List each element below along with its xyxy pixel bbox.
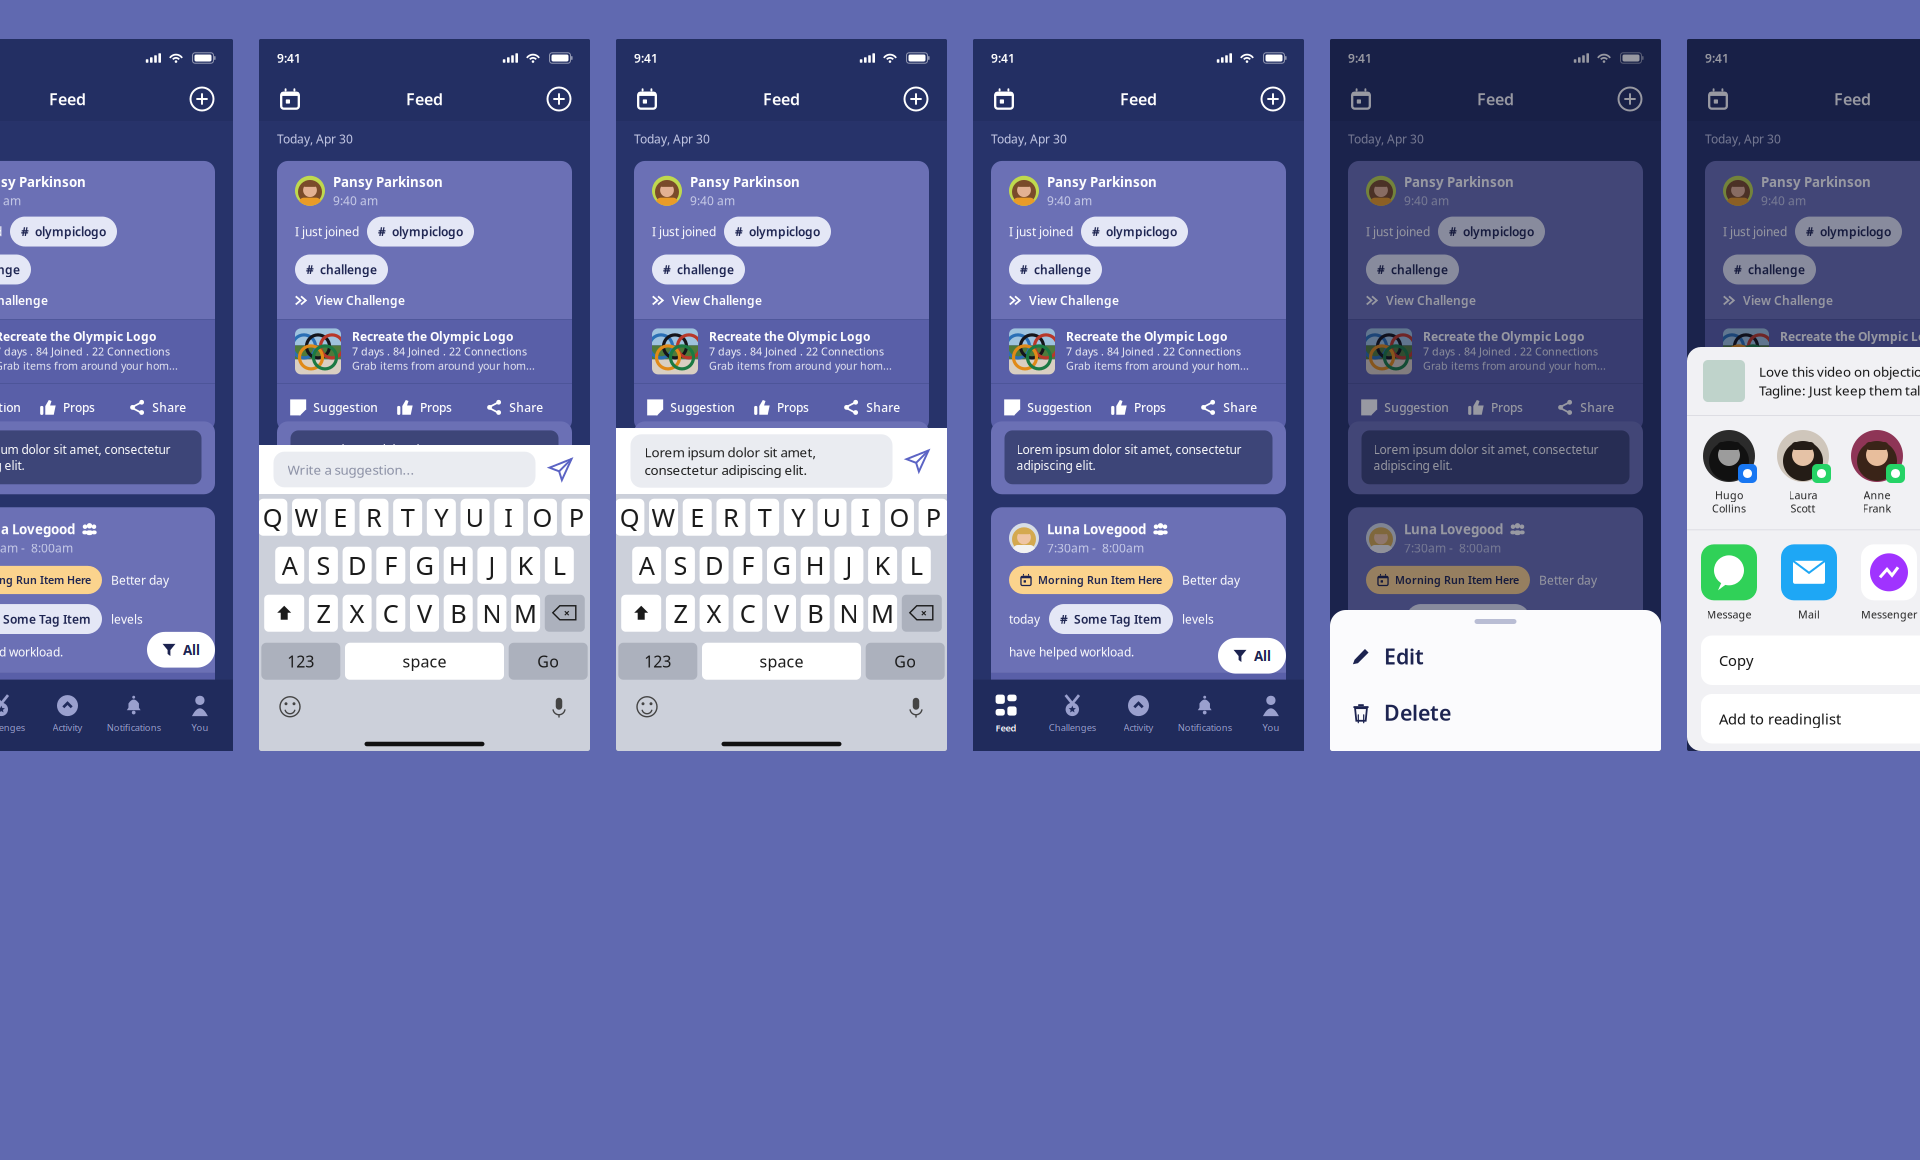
button[interactable]: Share: [1184, 689, 1274, 705]
button[interactable]: J: [834, 547, 863, 584]
button[interactable]: Feed: [973, 695, 1039, 734]
button[interactable]: Send: [902, 446, 932, 476]
button[interactable]: Props: [379, 399, 470, 415]
button[interactable]: H: [444, 547, 473, 584]
button[interactable]: L: [545, 547, 574, 584]
button[interactable]: H: [801, 547, 830, 584]
button[interactable]: View Challenge: [1009, 292, 1268, 308]
button[interactable]: T: [750, 499, 779, 536]
button[interactable]: New post: [185, 82, 219, 116]
button[interactable]: Share: [113, 689, 203, 705]
button[interactable]: All: [147, 632, 215, 668]
button[interactable]: 2: [1360, 689, 1450, 705]
button[interactable]: Share: [470, 399, 560, 415]
button[interactable]: Shift: [264, 595, 304, 632]
button[interactable]: K: [868, 547, 897, 584]
button[interactable]: Emoji: [634, 694, 660, 720]
button[interactable]: B: [444, 595, 473, 632]
button[interactable]: space: [345, 643, 504, 680]
button[interactable]: All: [1218, 638, 1286, 674]
button[interactable]: G: [767, 547, 796, 584]
button[interactable]: Go: [866, 643, 945, 680]
button[interactable]: Suggestion: [1360, 399, 1450, 415]
button[interactable]: Recreate the Olympic Logo: [277, 319, 572, 383]
button[interactable]: Share: [1184, 399, 1274, 415]
button[interactable]: S: [666, 547, 695, 584]
button[interactable]: Delete: [1330, 684, 1661, 741]
button[interactable]: Notifications: [1172, 695, 1238, 733]
button[interactable]: Props: [1093, 399, 1184, 415]
button[interactable]: Delete: [545, 595, 585, 632]
button[interactable]: S: [309, 547, 338, 584]
button[interactable]: Z: [309, 595, 338, 632]
button[interactable]: space: [702, 643, 861, 680]
button[interactable]: C: [733, 595, 762, 632]
button[interactable]: Calendar: [630, 82, 664, 116]
button[interactable]: N: [477, 595, 506, 632]
button[interactable]: Activity: [1105, 695, 1172, 733]
button[interactable]: Q: [615, 499, 644, 536]
button[interactable]: Recreate the Olympic Logo: [1705, 319, 1920, 383]
button[interactable]: Suggestion: [1717, 399, 1807, 415]
button[interactable]: Shift: [621, 595, 661, 632]
button[interactable]: 256: [1093, 689, 1184, 705]
button[interactable]: Challenges: [1039, 695, 1105, 733]
button[interactable]: Emoji: [277, 694, 303, 720]
button[interactable]: Calendar: [987, 82, 1021, 116]
button[interactable]: Y: [784, 499, 813, 536]
button[interactable]: O: [528, 499, 557, 536]
button[interactable]: K: [511, 547, 540, 584]
button[interactable]: New post: [542, 82, 576, 116]
button[interactable]: You: [1238, 695, 1304, 733]
button[interactable]: 256: [22, 689, 113, 705]
button[interactable]: E: [683, 499, 712, 536]
button[interactable]: Dictate: [546, 694, 572, 720]
button[interactable]: U: [461, 499, 490, 536]
button[interactable]: W: [292, 499, 321, 536]
button[interactable]: Y: [427, 499, 456, 536]
button[interactable]: Props: [1450, 399, 1541, 415]
button[interactable]: Calendar: [273, 82, 307, 116]
button[interactable]: Add to readinglist: [1701, 694, 1920, 743]
button[interactable]: View Challenge: [1366, 292, 1625, 308]
button[interactable]: I: [494, 499, 523, 536]
button[interactable]: Props: [736, 399, 827, 415]
button[interactable]: N: [834, 595, 863, 632]
button[interactable]: Send: [545, 454, 575, 484]
button[interactable]: Calendar: [1344, 82, 1378, 116]
button[interactable]: P: [562, 499, 591, 536]
button[interactable]: 2: [1003, 689, 1093, 705]
button[interactable]: Props: [22, 399, 113, 415]
button[interactable]: View Challenge: [652, 292, 911, 308]
button[interactable]: Share: [827, 399, 917, 415]
button[interactable]: New post: [1256, 82, 1290, 116]
button[interactable]: Delete: [902, 595, 942, 632]
button[interactable]: M: [511, 595, 540, 632]
button[interactable]: A: [275, 547, 304, 584]
button[interactable]: New post: [1613, 82, 1647, 116]
button[interactable]: W: [649, 499, 678, 536]
button[interactable]: Recreate the Olympic Logo: [0, 319, 215, 383]
button[interactable]: Q: [258, 499, 287, 536]
button[interactable]: New post: [899, 82, 933, 116]
button[interactable]: B: [801, 595, 830, 632]
button[interactable]: Challenges: [0, 695, 34, 733]
button[interactable]: Copy: [1701, 635, 1920, 685]
button[interactable]: O: [885, 499, 914, 536]
button[interactable]: I: [851, 499, 880, 536]
button[interactable]: E: [326, 499, 355, 536]
button[interactable]: Recreate the Olympic Logo: [991, 319, 1286, 383]
button[interactable]: V: [767, 595, 796, 632]
button[interactable]: Share: [1541, 399, 1631, 415]
button[interactable]: D: [700, 547, 729, 584]
button[interactable]: Suggestion: [646, 399, 736, 415]
button[interactable]: L: [902, 547, 931, 584]
button[interactable]: P: [919, 499, 948, 536]
button[interactable]: T: [393, 499, 422, 536]
button[interactable]: Activity: [34, 695, 101, 733]
button[interactable]: Dictate: [903, 694, 929, 720]
button[interactable]: Notifications: [101, 695, 167, 733]
